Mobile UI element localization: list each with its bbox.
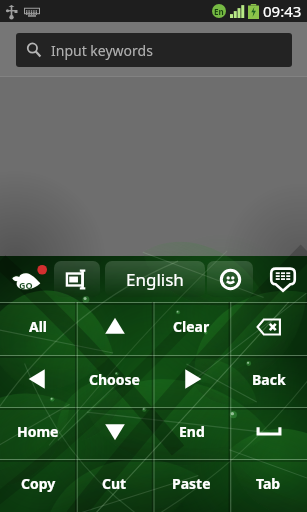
staticText: Copy bbox=[21, 474, 56, 493]
staticText: En bbox=[214, 6, 224, 17]
button[interactable]: All bbox=[0, 302, 76, 355]
button[interactable]: Clear bbox=[153, 302, 230, 355]
staticText: GO bbox=[19, 279, 33, 291]
staticText: Choose bbox=[89, 370, 140, 389]
staticText: Back bbox=[252, 370, 286, 389]
button[interactable]: Cut bbox=[76, 459, 153, 512]
button[interactable]: GO Keyboard menu bbox=[4, 258, 50, 300]
staticText: Input keywords bbox=[51, 41, 153, 60]
button[interactable]: Text editing bbox=[54, 261, 100, 297]
button[interactable]: Home bbox=[0, 407, 76, 459]
button[interactable]: Backspace bbox=[230, 302, 307, 355]
button[interactable]: Tab bbox=[230, 459, 307, 512]
staticText: Tab bbox=[256, 474, 281, 493]
button[interactable]: Right bbox=[153, 355, 230, 407]
button[interactable]: Choose bbox=[76, 355, 153, 407]
button[interactable]: Input keywords bbox=[16, 33, 292, 67]
button[interactable]: Hide keyboard bbox=[258, 256, 307, 302]
staticText: End bbox=[179, 422, 205, 441]
button[interactable]: Down bbox=[76, 407, 153, 459]
staticText: All bbox=[29, 317, 48, 336]
button[interactable]: Back bbox=[230, 355, 307, 407]
staticText: Cut bbox=[102, 474, 127, 493]
staticText: Paste bbox=[172, 474, 211, 493]
button[interactable]: English bbox=[105, 261, 205, 297]
button[interactable]: End bbox=[153, 407, 230, 459]
staticText: English bbox=[126, 268, 184, 291]
button[interactable]: Space bbox=[230, 407, 307, 459]
button[interactable]: Up bbox=[76, 302, 153, 355]
button[interactable]: Emoji bbox=[207, 261, 253, 297]
staticText: Home bbox=[17, 422, 59, 441]
button[interactable]: Left bbox=[0, 355, 76, 407]
staticText: 09:43 bbox=[263, 1, 302, 21]
staticText: Clear bbox=[173, 317, 210, 336]
button[interactable]: Copy bbox=[0, 459, 76, 512]
button[interactable]: Paste bbox=[153, 459, 230, 512]
